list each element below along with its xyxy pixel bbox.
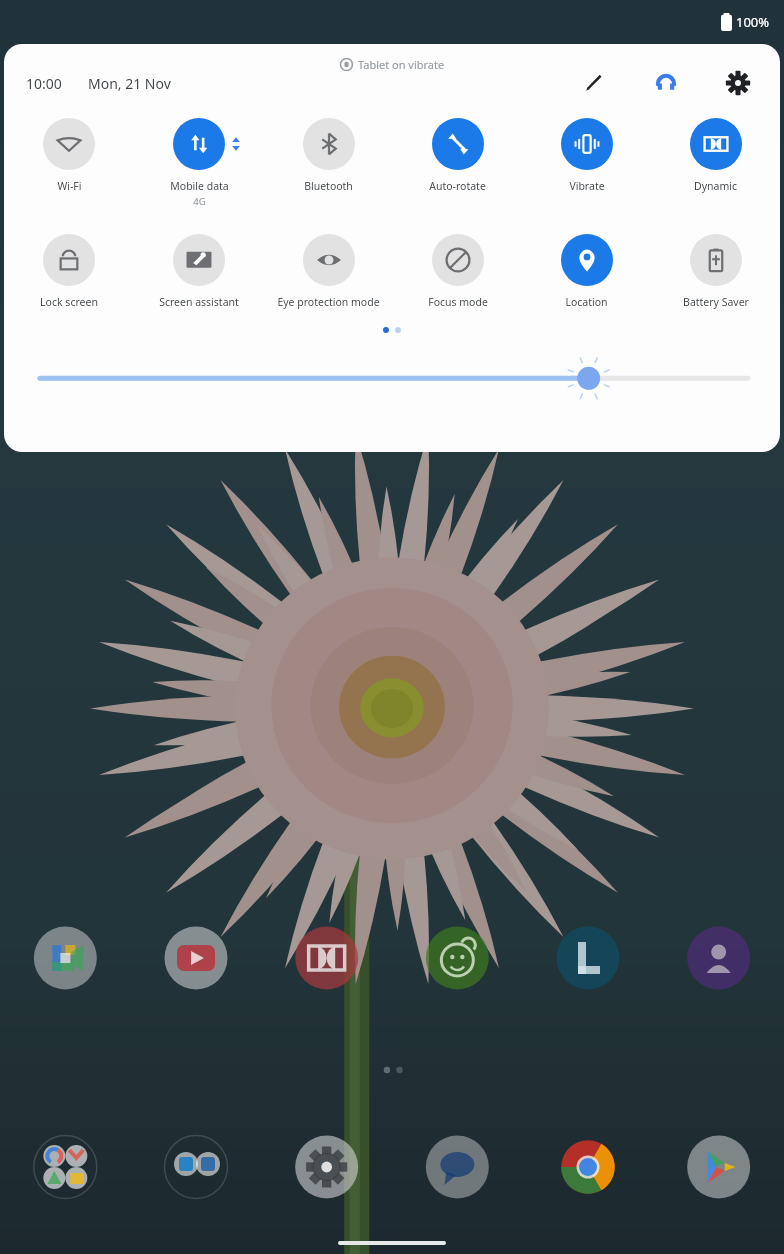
button[interactable]: Screen assistant bbox=[134, 232, 264, 311]
staticText: 4G bbox=[193, 195, 206, 208]
staticText: Eye protection mode bbox=[277, 295, 380, 309]
button[interactable]: Eye protection mode bbox=[264, 232, 393, 311]
staticText: Vibrate bbox=[569, 179, 605, 193]
staticText: Mobile data bbox=[170, 179, 229, 193]
button[interactable]: Dynamic bbox=[651, 116, 780, 195]
staticText: Dynamic bbox=[694, 179, 737, 193]
button[interactable]: Battery Saver bbox=[651, 232, 780, 311]
staticText: Focus mode bbox=[428, 295, 488, 309]
button[interactable]: Vibrate bbox=[522, 116, 651, 195]
staticText: 10:00 bbox=[26, 74, 62, 93]
button[interactable]: Wi-Fi bbox=[4, 116, 134, 195]
button[interactable]: Focus mode bbox=[393, 232, 522, 311]
staticText: Lock screen bbox=[40, 295, 98, 309]
button[interactable]: Location bbox=[522, 232, 651, 311]
staticText: Auto-rotate bbox=[429, 179, 486, 193]
staticText: Wi-Fi bbox=[57, 179, 82, 193]
staticText: Mon, 21 Nov bbox=[88, 74, 171, 93]
button[interactable]: Brightness bbox=[4, 359, 780, 403]
button[interactable]: Tablet on vibrate bbox=[336, 56, 449, 73]
button[interactable]: Mobile data bbox=[134, 116, 264, 210]
button[interactable]: Edit tiles bbox=[574, 63, 614, 103]
staticText: Tablet on vibrate bbox=[358, 57, 445, 72]
staticText: 100% bbox=[736, 13, 770, 31]
staticText: Battery Saver bbox=[683, 295, 749, 309]
button[interactable]: Settings bbox=[718, 63, 758, 103]
button[interactable]: Lock screen bbox=[4, 232, 134, 311]
staticText: Bluetooth bbox=[304, 179, 353, 193]
button[interactable]: User bbox=[646, 63, 686, 103]
staticText: Location bbox=[565, 295, 608, 309]
button[interactable]: Auto-rotate bbox=[393, 116, 522, 195]
button[interactable]: Bluetooth bbox=[264, 116, 393, 195]
staticText: Screen assistant bbox=[159, 295, 239, 309]
